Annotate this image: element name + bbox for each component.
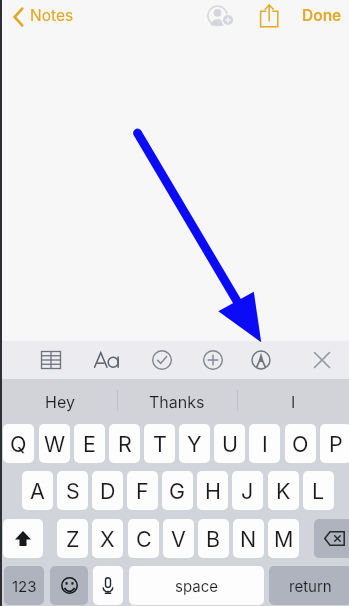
button[interactable]: Close keyboard (306, 342, 338, 378)
button[interactable]: Z (57, 519, 88, 558)
staticText: Q (10, 431, 27, 457)
button[interactable]: Shift (3, 519, 43, 558)
staticText: U (222, 431, 238, 457)
button[interactable]: Format (91, 342, 123, 378)
button[interactable]: S (57, 471, 88, 510)
staticText: Z (66, 526, 80, 552)
staticText: L (312, 478, 325, 504)
staticText: B (206, 526, 221, 552)
staticText: F (136, 478, 149, 504)
button[interactable]: Share (254, 0, 284, 32)
button[interactable]: Thanks (117, 379, 237, 423)
button[interactable]: G (162, 471, 193, 510)
staticText: Done (302, 6, 342, 25)
button[interactable]: Markup (245, 342, 277, 378)
staticText: E (83, 431, 96, 457)
button[interactable]: 123 (4, 566, 44, 605)
button[interactable]: space (129, 566, 264, 605)
button[interactable]: C (128, 519, 159, 558)
staticText: V (171, 526, 186, 552)
staticText: M (274, 526, 294, 552)
staticText: P (329, 431, 343, 457)
button[interactable]: K (268, 471, 299, 510)
staticText: N (240, 526, 257, 552)
staticText: D (100, 478, 116, 504)
staticText: W (44, 431, 66, 457)
staticText: T (153, 431, 167, 457)
staticText: return (289, 577, 332, 595)
button[interactable]: Add attachment (197, 342, 229, 378)
staticText: I (291, 392, 296, 411)
button[interactable]: A (22, 471, 53, 510)
button[interactable]: P (320, 424, 349, 463)
button[interactable]: J (232, 471, 263, 510)
button[interactable]: return (269, 566, 349, 605)
staticText: 123 (12, 577, 37, 595)
button[interactable]: Notes (8, 0, 76, 34)
staticText: A (30, 478, 45, 504)
button[interactable]: Q (3, 424, 34, 463)
button[interactable]: L (303, 471, 334, 510)
button[interactable]: X (92, 519, 123, 558)
staticText: C (136, 526, 152, 552)
staticText: Thanks (149, 392, 205, 411)
button[interactable]: Backspace (314, 519, 349, 558)
button[interactable]: Hey (2, 379, 117, 423)
button[interactable]: W (39, 424, 70, 463)
staticText: Y (187, 431, 202, 457)
button[interactable]: D (92, 471, 123, 510)
button[interactable]: V (163, 519, 194, 558)
staticText: G (169, 478, 186, 504)
button[interactable]: N (233, 519, 264, 558)
button[interactable]: Checklist (146, 342, 178, 378)
button[interactable]: T (144, 424, 175, 463)
button[interactable]: Done (294, 0, 344, 34)
staticText: X (100, 526, 115, 552)
staticText: R (118, 431, 132, 457)
button[interactable]: O (285, 424, 316, 463)
button[interactable]: Add People (205, 2, 235, 32)
button[interactable]: R (109, 424, 140, 463)
staticText: J (241, 478, 254, 504)
staticText: Notes (30, 6, 74, 25)
button[interactable]: Table (35, 342, 67, 378)
button[interactable]: E (74, 424, 105, 463)
staticText: space (175, 577, 218, 595)
button[interactable]: I (249, 424, 280, 463)
button[interactable]: M (268, 519, 299, 558)
button[interactable]: U (214, 424, 245, 463)
button[interactable]: Emoji (50, 566, 88, 605)
button[interactable]: I (237, 379, 349, 423)
button[interactable]: H (197, 471, 228, 510)
button[interactable]: Dictate (93, 566, 123, 605)
staticText: I (262, 431, 268, 457)
button[interactable]: F (127, 471, 158, 510)
staticText: S (66, 478, 80, 504)
staticText: O (292, 431, 309, 457)
button[interactable]: B (198, 519, 229, 558)
button[interactable]: Y (179, 424, 210, 463)
staticText: Hey (45, 392, 75, 411)
staticText: H (205, 478, 221, 504)
staticText: K (276, 478, 291, 504)
